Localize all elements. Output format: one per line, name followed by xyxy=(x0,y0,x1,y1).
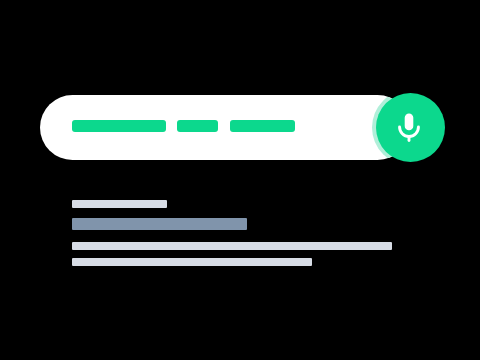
button[interactable]: Voice search xyxy=(376,93,445,162)
button[interactable] xyxy=(40,95,410,160)
button[interactable] xyxy=(72,218,392,266)
